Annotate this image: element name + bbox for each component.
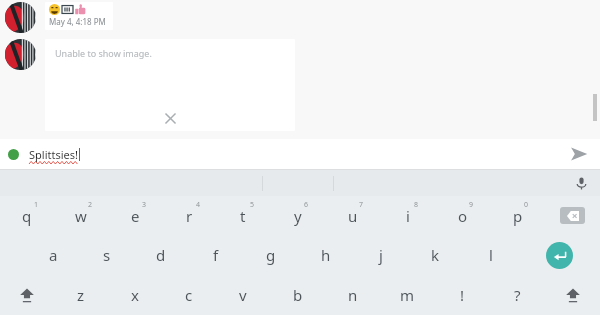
button[interactable]: c (162, 275, 216, 315)
button[interactable]: k (408, 235, 463, 275)
button[interactable]: Backspace (545, 196, 600, 235)
staticText: f (213, 245, 219, 265)
staticText: 5 (250, 200, 255, 210)
staticText: v (239, 285, 247, 305)
button[interactable]: h (298, 235, 353, 275)
staticText: k (431, 245, 440, 265)
staticText: i (406, 206, 410, 226)
button[interactable]: n (325, 275, 380, 315)
button[interactable]: w (54, 196, 108, 235)
button[interactable]: q (0, 196, 54, 235)
button[interactable]: m (380, 275, 435, 315)
staticText: 1 (34, 200, 39, 210)
staticText: 8 (414, 200, 419, 210)
button[interactable]: r (162, 196, 216, 235)
staticText: z (77, 285, 85, 305)
staticText: e (131, 206, 140, 226)
staticText: l (489, 245, 493, 265)
staticText: g (266, 245, 276, 265)
staticText: ! (460, 285, 465, 305)
button[interactable]: s (80, 235, 134, 275)
button[interactable]: Enter (546, 242, 573, 269)
button[interactable]: i (380, 196, 435, 235)
staticText: 2 (88, 200, 93, 210)
button[interactable]: l (463, 235, 518, 275)
staticText: t (240, 206, 246, 226)
staticText: Unable to show image. (55, 47, 152, 59)
staticText: u (348, 206, 358, 226)
staticText: o (458, 206, 468, 226)
button[interactable]: May 4, 4:18 PM (45, 2, 113, 30)
staticText: b (293, 285, 303, 305)
button[interactable]: v (216, 275, 270, 315)
button[interactable]: Profile (8, 149, 19, 160)
staticText: a (49, 245, 58, 265)
button[interactable]: u (325, 196, 380, 235)
staticText: 0 (524, 200, 529, 210)
button[interactable]: Voice input (572, 174, 590, 192)
button[interactable]: Send (558, 139, 600, 169)
staticText: ? (514, 285, 521, 305)
button[interactable]: f (188, 235, 243, 275)
button[interactable]: e (108, 196, 162, 235)
staticText: q (22, 206, 32, 226)
staticText: May 4, 4:18 PM (49, 16, 106, 27)
staticText: 9 (469, 200, 474, 210)
staticText: p (513, 206, 523, 226)
staticText: n (348, 285, 358, 305)
button[interactable]: Unable to show image. (45, 39, 295, 131)
staticText: s (103, 245, 111, 265)
staticText: m (400, 285, 415, 305)
button[interactable]: y (270, 196, 325, 235)
button[interactable]: p (490, 196, 545, 235)
button[interactable]: Shift (0, 275, 54, 315)
button[interactable]: b (270, 275, 325, 315)
staticText: j (379, 245, 383, 265)
staticText: d (156, 245, 166, 265)
button[interactable]: Shift (545, 275, 600, 315)
button[interactable]: j (353, 235, 408, 275)
staticText: 3 (142, 200, 147, 210)
staticText: w (75, 206, 87, 226)
staticText: h (321, 245, 331, 265)
button[interactable]: d (134, 235, 188, 275)
button[interactable]: t (216, 196, 270, 235)
button[interactable]: ? (490, 275, 545, 315)
staticText: 4 (196, 200, 201, 210)
staticText: c (185, 285, 193, 305)
button[interactable]: z (54, 275, 108, 315)
button[interactable]: g (243, 235, 298, 275)
staticText: 6 (304, 200, 309, 210)
button[interactable]: ! (435, 275, 490, 315)
staticText: x (131, 285, 139, 305)
button[interactable]: a (26, 235, 80, 275)
button[interactable]: o (435, 196, 490, 235)
staticText: 7 (359, 200, 364, 210)
staticText: r (186, 206, 193, 226)
button[interactable]: x (108, 275, 162, 315)
staticText: y (294, 206, 302, 226)
staticText: Splittsies! (29, 147, 78, 162)
